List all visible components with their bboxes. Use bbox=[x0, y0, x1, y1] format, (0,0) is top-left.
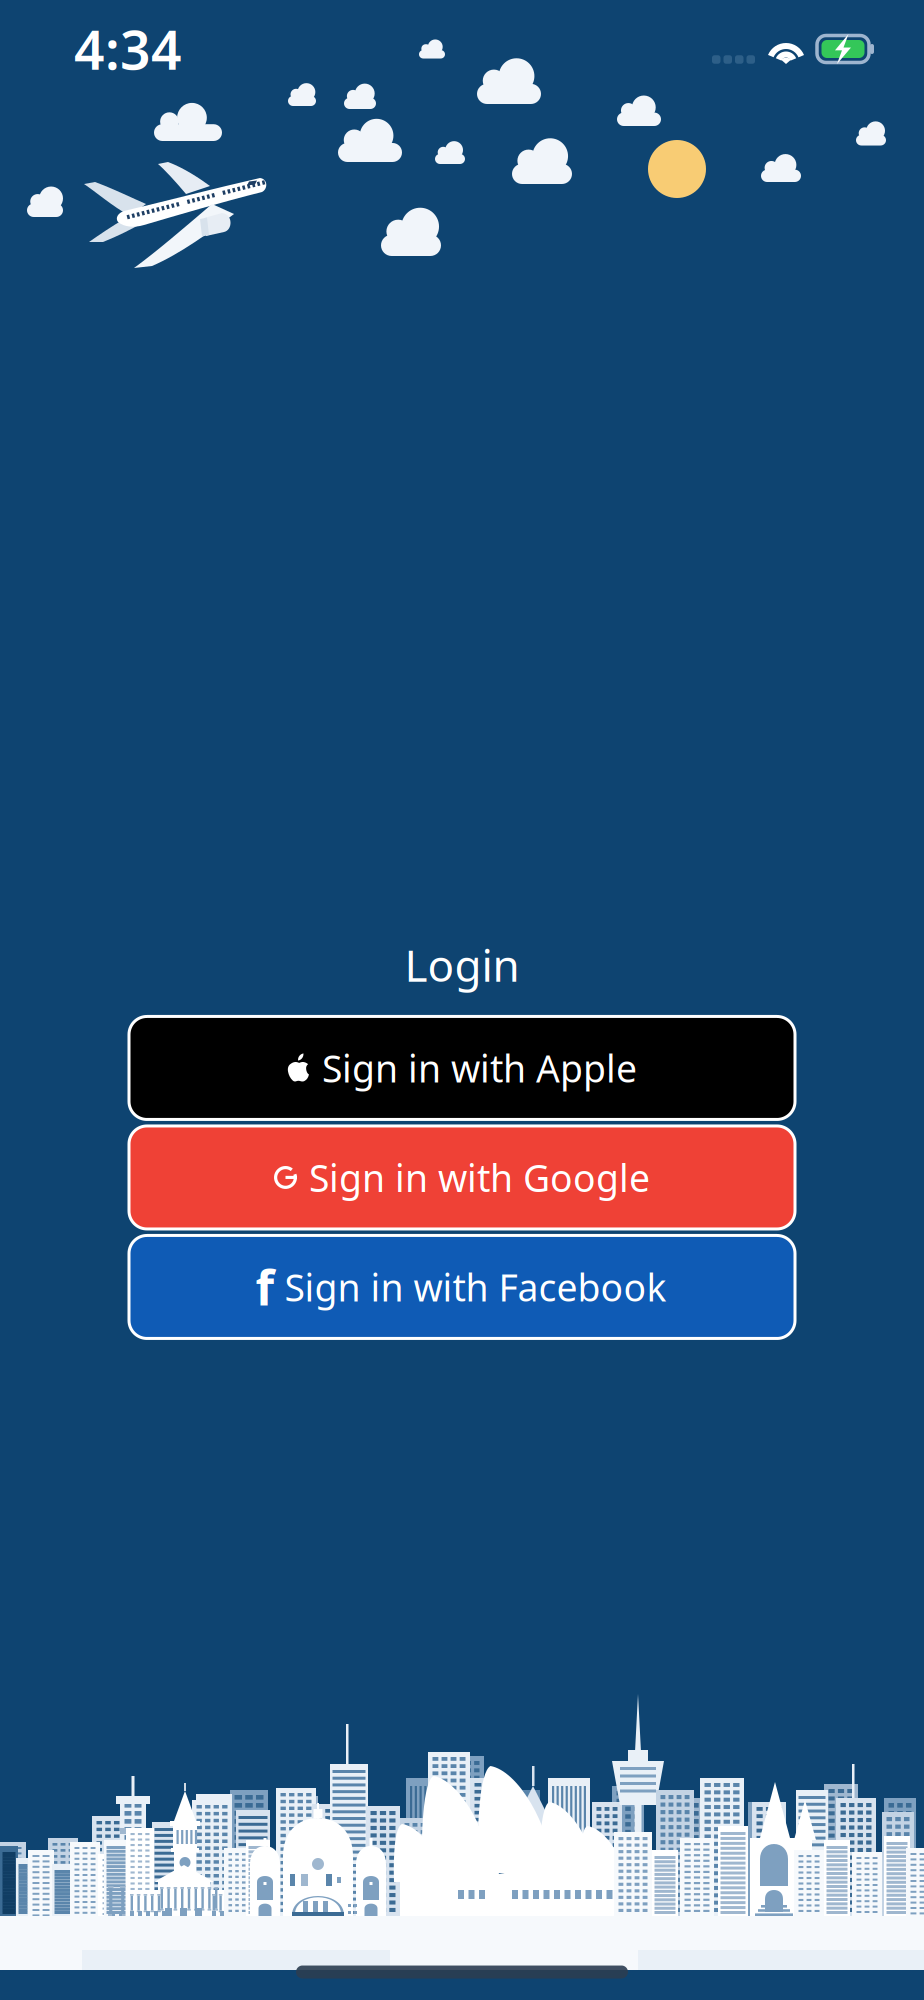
staticText: 4:34 bbox=[74, 14, 182, 84]
button[interactable]: f bbox=[129, 1235, 795, 1338]
staticText: Sign in with Apple bbox=[322, 1043, 637, 1093]
staticText: f bbox=[255, 1255, 274, 1319]
button[interactable]: Sign in with Google bbox=[129, 1126, 795, 1229]
button[interactable]: Sign in with Apple bbox=[129, 1016, 795, 1119]
staticText: Sign in with Google bbox=[309, 1153, 650, 1202]
staticText: Login bbox=[404, 935, 519, 994]
staticText: Sign in with Facebook bbox=[284, 1262, 666, 1312]
